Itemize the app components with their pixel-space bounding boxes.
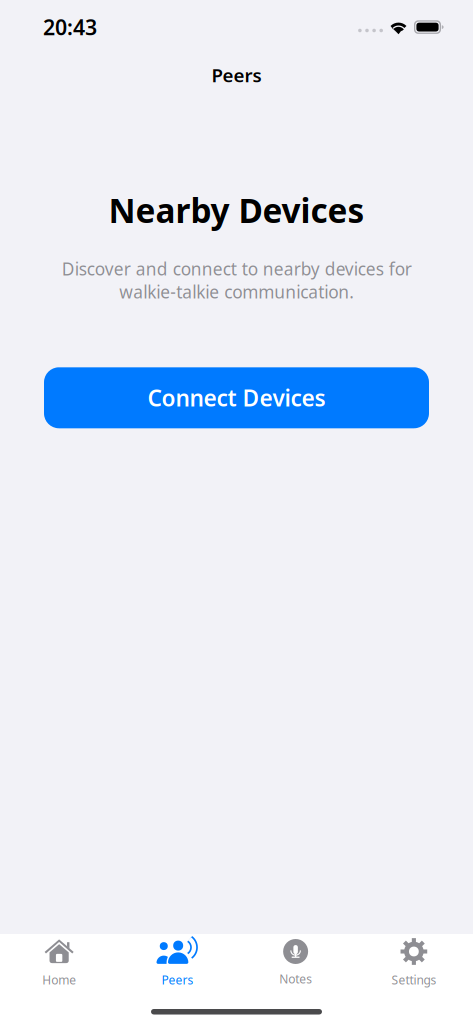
button[interactable]: Settings <box>355 934 473 988</box>
staticText: Discover and connect to nearby devices f… <box>61 257 411 303</box>
staticText: Home <box>42 972 76 988</box>
staticText: Notes <box>279 971 312 987</box>
button[interactable]: Home <box>0 934 118 988</box>
staticText: Settings <box>391 972 436 988</box>
staticText: Connect Devices <box>147 383 325 413</box>
staticText: Peers <box>211 63 261 87</box>
button[interactable]: Connect Devices <box>44 367 429 428</box>
staticText: Peers <box>161 972 193 988</box>
button[interactable]: Notes <box>236 935 355 987</box>
staticText: 20:43 <box>43 13 97 41</box>
button[interactable]: Peers <box>118 934 236 988</box>
staticText: Nearby Devices <box>108 188 364 232</box>
